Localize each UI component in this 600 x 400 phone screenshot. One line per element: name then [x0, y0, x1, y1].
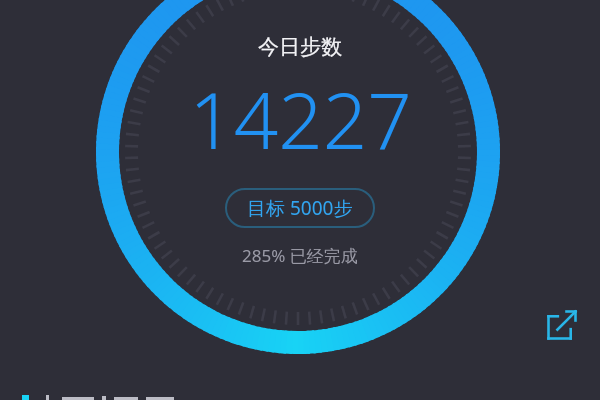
staticText: 14227 — [189, 66, 412, 172]
button[interactable]: 目标 5000步 — [225, 188, 375, 228]
button[interactable] — [22, 386, 152, 400]
staticText: 今日步数 — [258, 34, 342, 60]
staticText: 285% 已经完成 — [242, 244, 358, 267]
button[interactable]: Share — [540, 303, 584, 347]
staticText: 目标 5000步 — [247, 195, 353, 221]
